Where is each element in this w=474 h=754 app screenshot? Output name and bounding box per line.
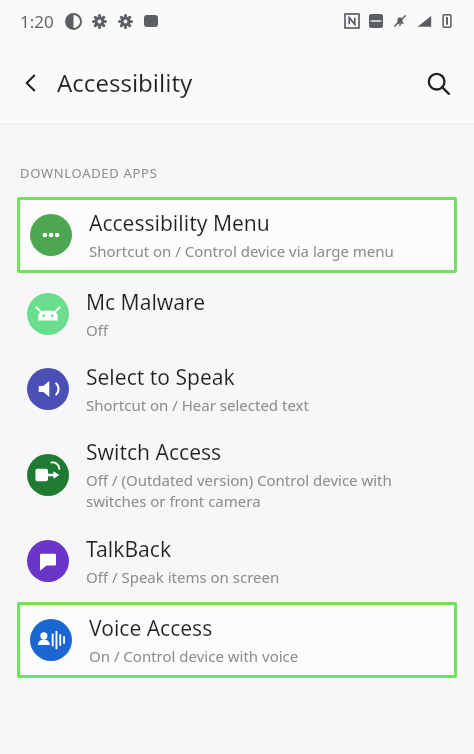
button[interactable]: Accessibility Menu [17, 197, 457, 273]
button[interactable]: Back [10, 62, 52, 104]
staticText: Accessibility [57, 66, 193, 99]
button[interactable]: TalkBack [0, 533, 474, 589]
staticText: DOWNLOADED APPS [20, 164, 158, 182]
staticText: Off [86, 320, 109, 340]
staticText: TalkBack [86, 535, 172, 564]
staticText: Off / (Outdated version) Control device … [86, 470, 454, 512]
staticText: Mc Malware [86, 288, 206, 317]
staticText: Accessibility Menu [89, 209, 270, 238]
staticText: Voice Access [89, 614, 213, 643]
button[interactable]: Switch Access [0, 436, 474, 514]
staticText: Off / Speak items on screen [86, 567, 280, 587]
button[interactable]: Search [416, 61, 460, 105]
button[interactable]: Voice Access [17, 602, 457, 678]
staticText: 1:20 [20, 10, 54, 33]
staticText: Select to Speak [86, 363, 235, 392]
staticText: Switch Access [86, 438, 222, 467]
button[interactable]: Mc Malware [0, 286, 474, 342]
staticText: Shortcut on / Hear selected text [86, 395, 309, 415]
staticText: On / Control device with voice [89, 646, 299, 666]
staticText: Shortcut on / Control device via large m… [89, 241, 394, 261]
button[interactable]: Select to Speak [0, 361, 474, 417]
